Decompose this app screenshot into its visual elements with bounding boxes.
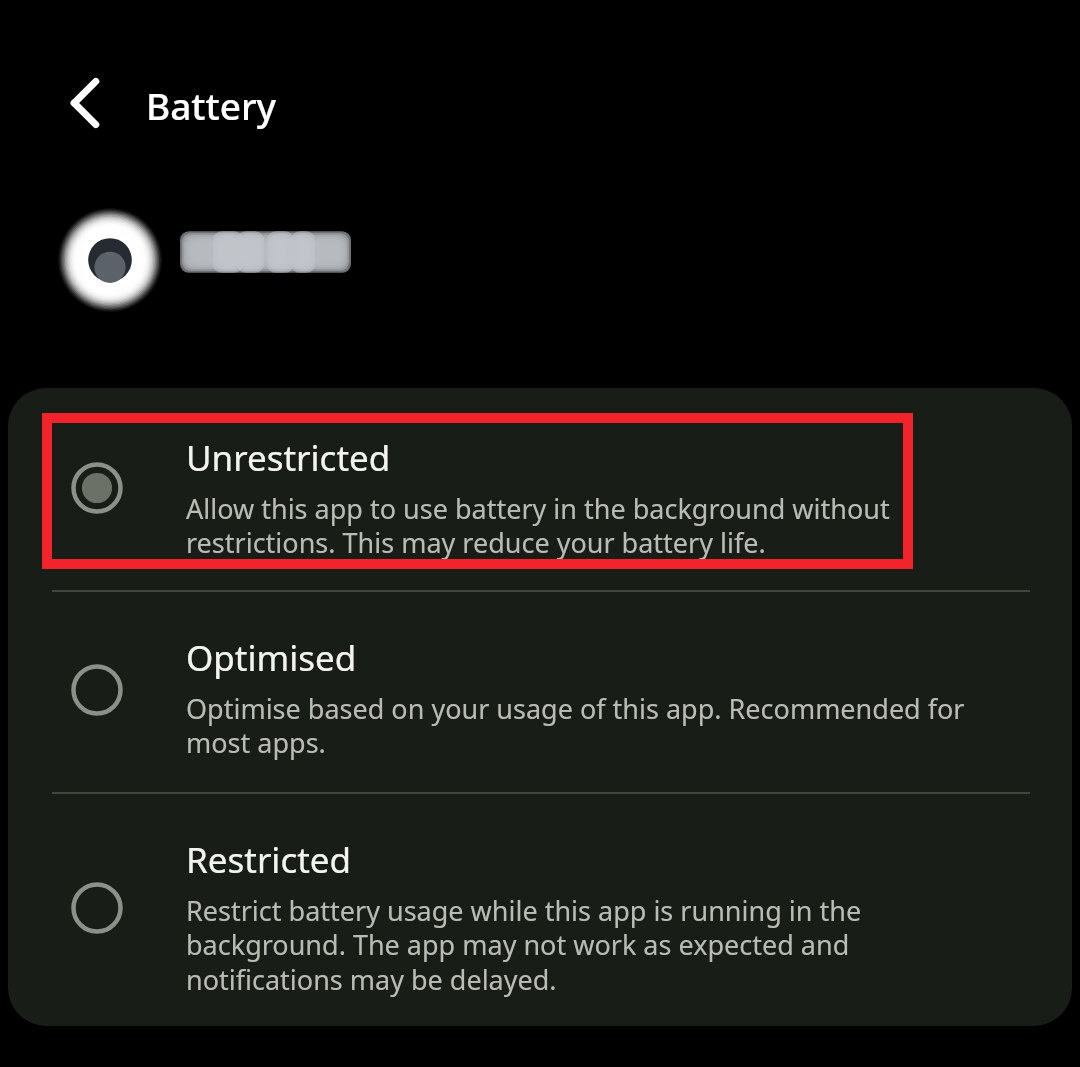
staticText: Optimise based on your usage of this app…: [186, 690, 965, 761]
staticText: Restrict battery usage while this app is…: [186, 892, 862, 998]
button[interactable]: Unrestricted: [8, 388, 1072, 590]
staticText: Unrestricted: [186, 434, 391, 482]
button[interactable]: Back: [42, 60, 128, 146]
staticText: Optimised: [186, 634, 357, 682]
staticText: Allow this app to use battery in the bac…: [186, 490, 890, 561]
button[interactable]: Restricted: [8, 792, 1072, 1026]
staticText: Restricted: [186, 836, 352, 884]
button[interactable]: Optimised: [8, 590, 1072, 792]
staticText: Battery: [146, 80, 277, 130]
